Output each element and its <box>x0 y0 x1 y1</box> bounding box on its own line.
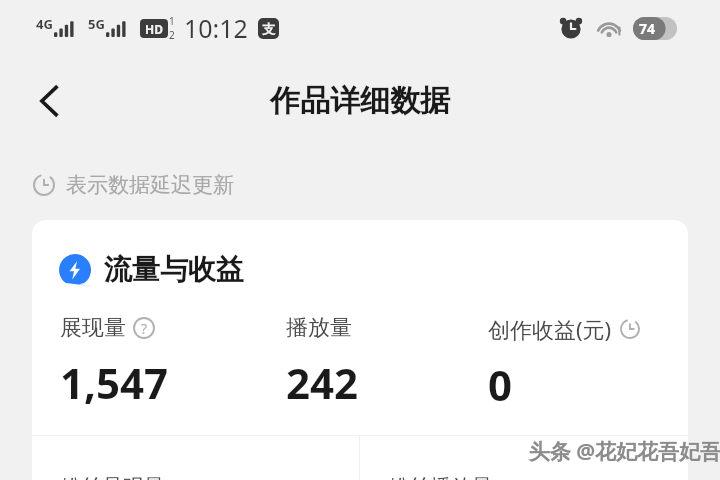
staticText: 242 <box>286 354 359 411</box>
staticText: 展现量 <box>60 314 126 342</box>
button[interactable]: 创作收益(元) <box>488 314 688 413</box>
staticText: 播放量 <box>286 314 352 342</box>
staticText: 流量与收益 <box>104 252 244 287</box>
staticText: 74 <box>639 19 656 38</box>
button[interactable]: Back <box>20 71 80 131</box>
staticText: 支 <box>262 21 275 37</box>
staticText: 10:12 <box>184 11 248 45</box>
staticText: 4G <box>36 15 53 33</box>
button[interactable]: 展现量 <box>60 314 286 411</box>
button[interactable]: 粉丝播放量 <box>360 436 688 480</box>
button[interactable]: 流量与收益 <box>32 220 688 480</box>
staticText: 头条 @花妃花吾妃吾 <box>528 437 720 466</box>
button[interactable]: 粉丝是观量 <box>32 436 359 480</box>
staticText: 作品详细数据 <box>270 82 450 120</box>
button[interactable]: 播放量 <box>286 314 488 411</box>
staticText: 1 <box>169 14 175 28</box>
staticText: ? <box>141 319 148 338</box>
staticText: HD <box>145 21 163 37</box>
staticText: 2 <box>169 28 175 42</box>
staticText: 1,547 <box>60 354 169 411</box>
staticText: 创作收益(元) <box>488 314 612 344</box>
staticText: 粉丝是观量 <box>60 474 165 480</box>
button[interactable]: 表示数据延迟更新 <box>32 165 234 205</box>
staticText: 0 <box>488 356 513 413</box>
staticText: 5G <box>88 15 105 33</box>
staticText: 粉丝播放量 <box>388 474 493 480</box>
staticText: 表示数据延迟更新 <box>66 172 234 198</box>
